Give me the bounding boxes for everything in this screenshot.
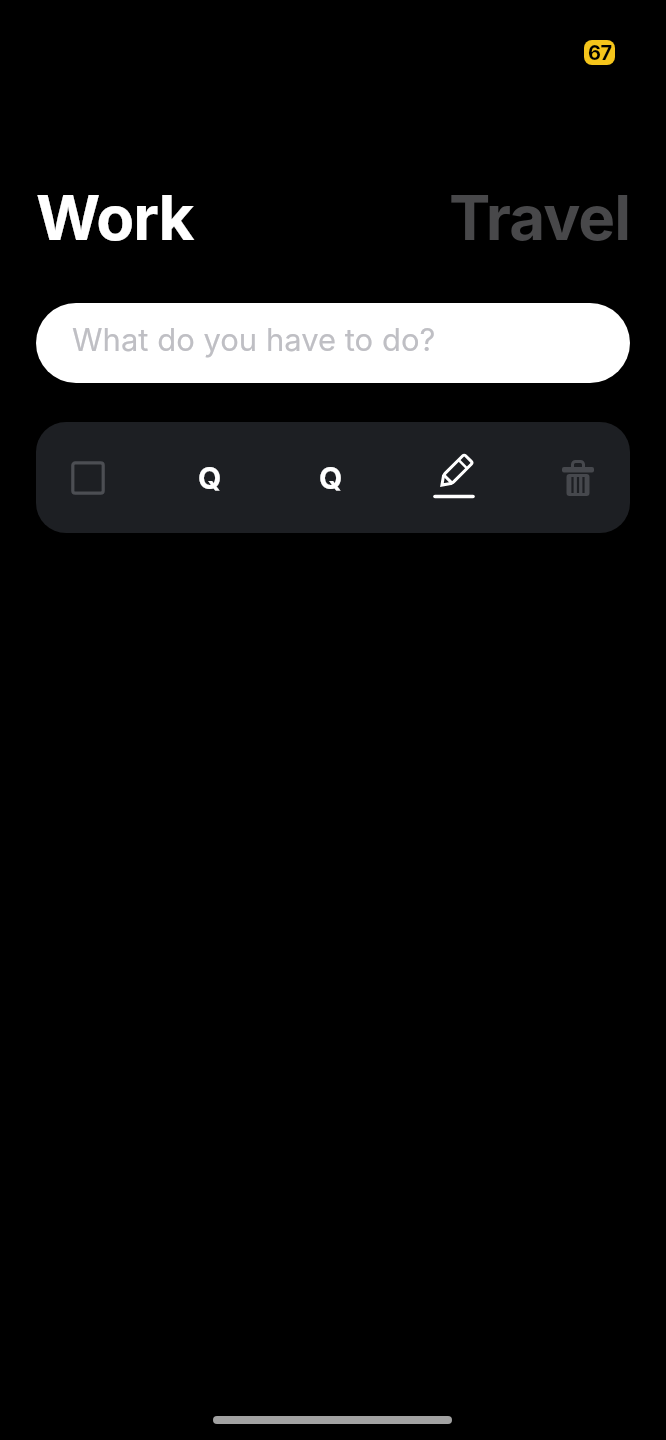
button[interactable] xyxy=(68,458,108,498)
button[interactable] xyxy=(433,456,477,500)
button[interactable]: Q xyxy=(311,458,351,498)
staticText: 67 xyxy=(588,41,612,65)
button[interactable] xyxy=(558,458,598,498)
button[interactable]: Q xyxy=(190,458,230,498)
staticText: Q xyxy=(319,460,343,496)
button[interactable]: Work xyxy=(36,180,194,255)
staticText: Q xyxy=(198,460,222,496)
button[interactable]: Travel xyxy=(449,180,630,255)
staticText: What do you have to do? xyxy=(72,321,436,359)
button[interactable]: What do you have to do? xyxy=(36,303,630,383)
